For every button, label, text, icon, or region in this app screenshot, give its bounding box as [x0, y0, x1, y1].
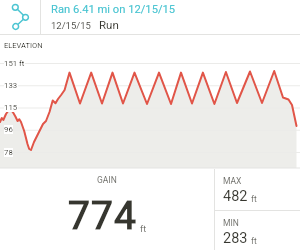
staticText: ft: [251, 236, 257, 246]
staticText: 96: [4, 125, 13, 134]
staticText: 482: [223, 188, 248, 205]
other: Route: [0, 0, 40, 34]
staticText: 151 ft: [4, 59, 25, 68]
staticText: ELEVATION: [4, 41, 43, 50]
staticText: 12/15/15: [51, 20, 91, 31]
staticText: Run: [99, 18, 119, 31]
button[interactable]: MAX: [215, 169, 300, 210]
staticText: GAIN: [97, 175, 117, 185]
button[interactable]: MIN: [215, 211, 300, 250]
button[interactable]: Route: [0, 0, 300, 34]
staticText: 774: [68, 193, 138, 239]
staticText: ft: [140, 224, 147, 235]
staticText: 115: [4, 103, 18, 112]
staticText: MIN: [223, 218, 239, 228]
button[interactable]: GAIN: [0, 169, 214, 250]
staticText: ft: [251, 194, 257, 204]
staticText: 133: [4, 81, 18, 90]
staticText: MAX: [223, 176, 242, 186]
staticText: 283: [223, 230, 248, 247]
staticText: 78: [4, 148, 13, 157]
staticText: Ran 6.41 mi on 12/15/15: [51, 3, 176, 16]
